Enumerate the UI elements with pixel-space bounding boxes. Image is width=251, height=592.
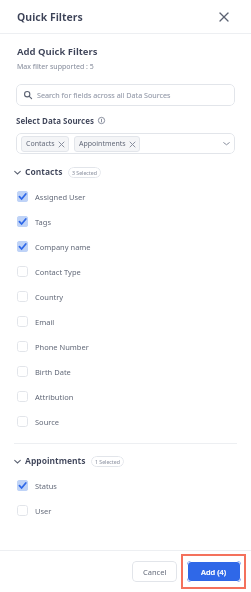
button[interactable]: Cancel — [132, 561, 177, 582]
staticText: Quick Filters — [17, 10, 83, 24]
button[interactable]: Birth Date — [0, 359, 251, 384]
staticText: Phone Number — [35, 342, 89, 352]
button[interactable]: Assigned User — [0, 184, 251, 209]
staticText: Appointments — [79, 139, 126, 149]
button[interactable]: Tags — [0, 209, 251, 234]
staticText: Email — [35, 317, 55, 327]
staticText: Appointments — [25, 455, 86, 467]
button[interactable]: Source — [0, 409, 251, 434]
staticText: Contacts — [26, 139, 55, 149]
button[interactable]: Add (4) — [187, 561, 241, 582]
staticText: User — [35, 506, 52, 516]
staticText: Source — [35, 417, 60, 427]
button[interactable]: Close — [213, 6, 235, 28]
button[interactable]: Email — [0, 309, 251, 334]
staticText: Country — [35, 292, 64, 302]
button[interactable]: Company name — [0, 234, 251, 259]
staticText: Birth Date — [35, 367, 71, 377]
staticText: Company name — [35, 242, 91, 252]
staticText: Add Quick Filters — [17, 45, 98, 58]
staticText: Search for fields across all Data Source… — [37, 90, 171, 100]
button[interactable]: Contact Type — [0, 259, 251, 284]
staticText: Add (4) — [201, 567, 227, 577]
button[interactable]: Status — [0, 473, 251, 498]
button[interactable]: Phone Number — [0, 334, 251, 359]
button[interactable]: Appointments — [0, 451, 251, 471]
button[interactable]: User — [0, 498, 251, 523]
staticText: 1 Selected — [95, 458, 120, 465]
staticText: 3 Selected — [72, 169, 97, 176]
button[interactable]: Contacts — [0, 162, 251, 182]
button[interactable]: Contacts — [21, 136, 69, 152]
staticText: Status — [35, 481, 57, 491]
staticText: Contact Type — [35, 267, 81, 277]
staticText: Select Data Sources — [16, 115, 94, 126]
button[interactable]: Appointments — [74, 136, 140, 152]
staticText: Contacts — [25, 166, 63, 178]
staticText: Attribution — [35, 392, 74, 402]
staticText: Assigned User — [35, 192, 86, 202]
button[interactable]: Search for fields across all Data Source… — [16, 84, 235, 106]
button[interactable]: Contacts — [16, 133, 235, 154]
staticText: Max filter supported : 5 — [17, 62, 94, 72]
button[interactable]: Country — [0, 284, 251, 309]
staticText: Cancel — [143, 567, 167, 577]
staticText: Tags — [35, 217, 51, 227]
button[interactable]: Attribution — [0, 384, 251, 409]
